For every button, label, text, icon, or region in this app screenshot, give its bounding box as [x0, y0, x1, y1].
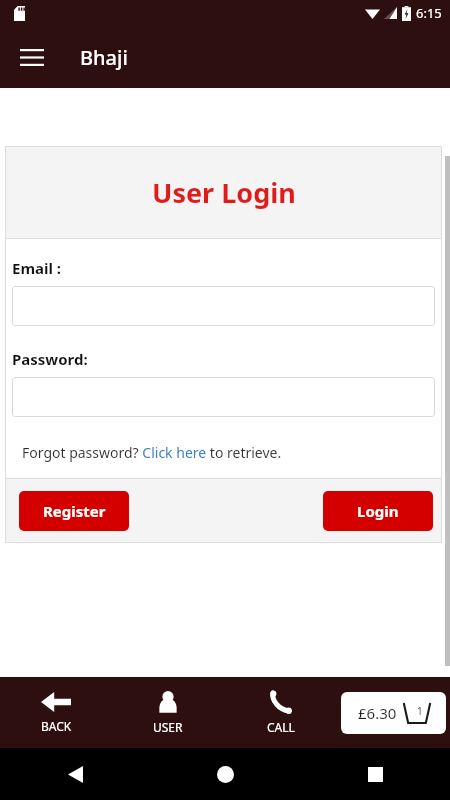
staticText: BACK [41, 718, 72, 734]
staticText: £6.30 [358, 703, 397, 723]
button[interactable]: CALL [224, 677, 337, 748]
staticText: User Login [152, 174, 296, 211]
button[interactable]: Text input [12, 377, 435, 417]
staticText: 6:15 [416, 4, 442, 22]
button[interactable]: Recent apps [300, 748, 450, 800]
staticText: USER [153, 719, 183, 735]
button[interactable]: Back [0, 748, 150, 800]
staticText: Email : [12, 258, 62, 278]
staticText: Bhaji [80, 44, 128, 71]
staticText: 1 [417, 704, 423, 718]
button[interactable]: Register [19, 491, 129, 531]
button[interactable]: Open navigation menu [10, 35, 54, 79]
button[interactable]: Login [323, 491, 433, 531]
staticText: Forgot password? Click here to retrieve. [22, 443, 282, 462]
button[interactable]: Basket, £6.30, 1 item [341, 692, 446, 734]
staticText: Register [43, 501, 106, 521]
button[interactable]: Forgot password? Click here to retrieve. [12, 441, 435, 464]
button[interactable]: BACK [0, 677, 112, 748]
button[interactable]: USER [112, 677, 224, 748]
staticText: CALL [267, 719, 295, 735]
button[interactable]: Home [150, 748, 300, 800]
staticText: Password: [12, 349, 88, 369]
button[interactable]: Text input [12, 286, 435, 326]
staticText: Login [357, 501, 399, 521]
